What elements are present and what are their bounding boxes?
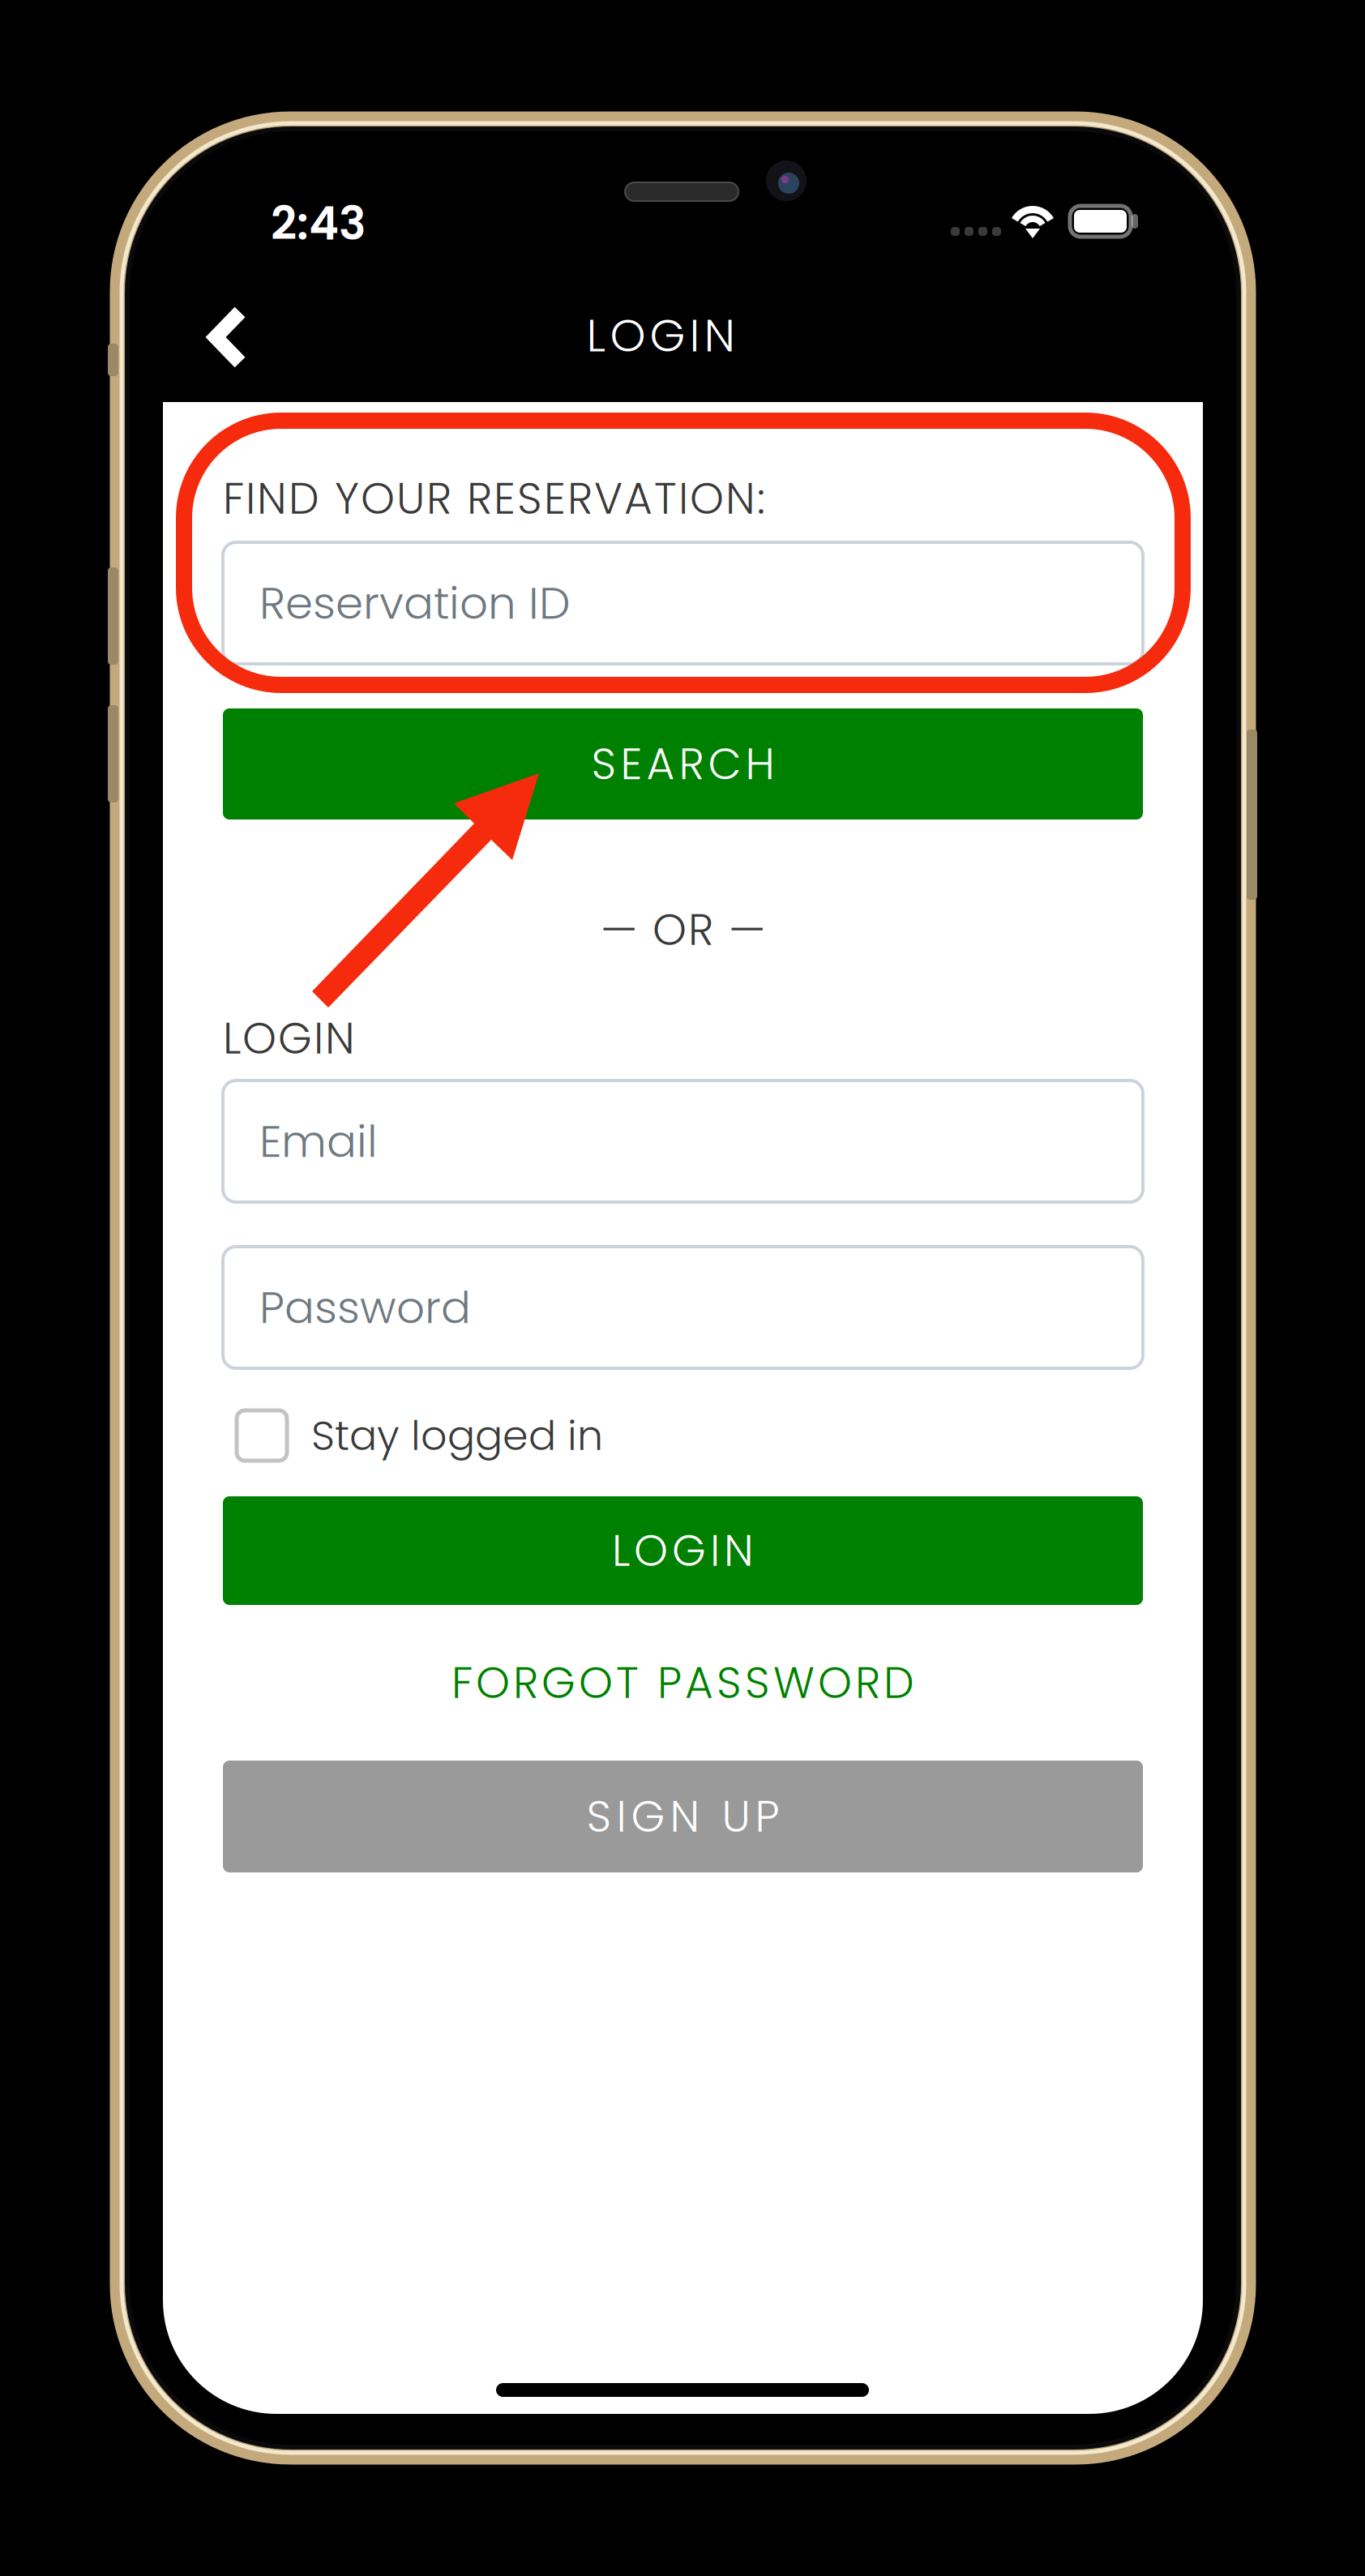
staticText: SIGN UP <box>586 1786 779 1847</box>
button[interactable]: Back <box>169 280 291 394</box>
button[interactable]: LOGIN <box>223 1496 1143 1605</box>
staticText: 2:43 <box>271 192 366 255</box>
button[interactable]: FORGOT PASSWORD <box>223 1649 1143 1717</box>
staticText: LOGIN <box>223 1008 355 1069</box>
staticText: LOGIN <box>612 1520 754 1581</box>
button[interactable]: Stay logged in <box>237 1401 1157 1470</box>
staticText: LOGIN <box>586 304 735 367</box>
staticText: FIND YOUR RESERVATION: <box>223 468 765 529</box>
staticText: SEARCH <box>591 734 774 794</box>
staticText: Password <box>259 1276 471 1338</box>
button[interactable]: SEARCH <box>223 708 1143 819</box>
button[interactable]: SIGN UP <box>223 1761 1143 1872</box>
staticText: Stay logged in <box>311 1407 603 1464</box>
staticText: — OR — <box>601 899 765 960</box>
staticText: Reservation ID <box>259 572 571 634</box>
staticText: FORGOT PASSWORD <box>451 1653 914 1713</box>
staticText: Email <box>259 1110 378 1172</box>
